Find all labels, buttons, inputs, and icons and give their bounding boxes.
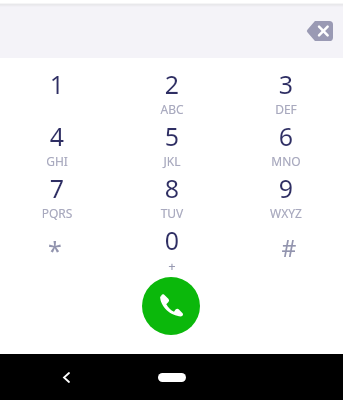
button[interactable]: Home: [158, 373, 186, 382]
staticText: DEF: [229, 101, 343, 117]
button[interactable]: #: [229, 219, 343, 271]
staticText: PQRS: [0, 205, 114, 221]
button[interactable]: 3: [229, 63, 343, 115]
button[interactable]: 2: [115, 63, 229, 115]
staticText: 2: [115, 67, 229, 101]
button[interactable]: Call: [142, 277, 200, 335]
button[interactable]: 5: [115, 115, 229, 167]
staticText: WXYZ: [229, 205, 343, 221]
button[interactable]: Backspace: [300, 12, 337, 49]
staticText: TUV: [115, 205, 229, 221]
button[interactable]: 4: [0, 115, 114, 167]
button[interactable]: 8: [115, 167, 229, 219]
staticText: +: [115, 257, 229, 275]
staticText: 9: [229, 171, 343, 205]
staticText: GHI: [0, 153, 114, 169]
button[interactable]: 9: [229, 167, 343, 219]
staticText: 5: [115, 119, 229, 153]
staticText: 3: [229, 67, 343, 101]
staticText: #: [232, 232, 343, 263]
staticText: 4: [0, 119, 114, 153]
staticText: MNO: [229, 153, 343, 169]
button[interactable]: 6: [229, 115, 343, 167]
staticText: 0: [115, 223, 229, 257]
button[interactable]: Back: [50, 361, 82, 393]
staticText: 1: [0, 67, 114, 101]
button[interactable]: 1: [0, 63, 114, 115]
staticText: 6: [229, 119, 343, 153]
staticText: JKL: [115, 153, 229, 169]
staticText: 8: [115, 171, 229, 205]
button[interactable]: 0: [115, 219, 229, 271]
button[interactable]: *: [0, 219, 114, 271]
staticText: 7: [0, 171, 114, 205]
staticText: ABC: [115, 101, 229, 117]
button[interactable]: 7: [0, 167, 114, 219]
staticText: *: [0, 233, 112, 267]
